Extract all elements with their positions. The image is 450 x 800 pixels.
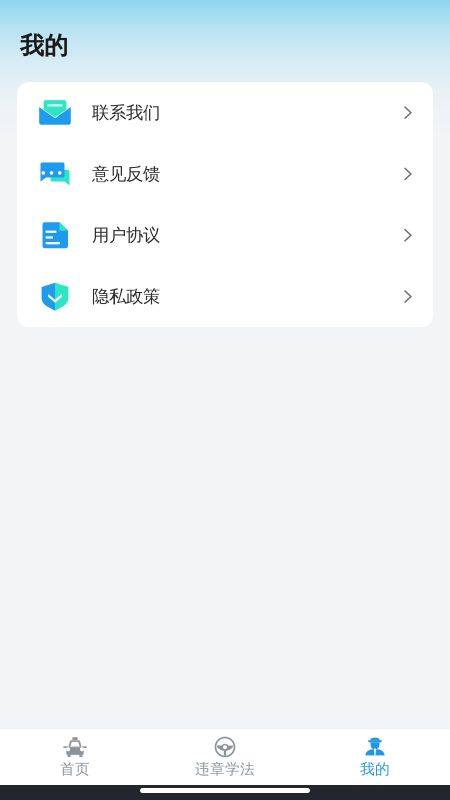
button[interactable]: 意见反馈	[17, 143, 433, 205]
staticText: 联系我们	[92, 102, 160, 123]
staticText: 用户协议	[92, 225, 160, 246]
staticText: 违章学法	[195, 760, 255, 778]
button[interactable]: 用户协议	[17, 205, 433, 266]
button[interactable]: 联系我们	[17, 82, 433, 143]
staticText: 首页	[60, 760, 90, 778]
button[interactable]: 违章学法	[150, 729, 300, 785]
button[interactable]: 首页	[0, 729, 150, 785]
staticText: 我的	[360, 760, 390, 778]
button[interactable]: 我的	[300, 729, 450, 785]
button[interactable]: 隐私政策	[17, 266, 433, 327]
staticText: 隐私政策	[92, 286, 160, 307]
staticText: 意见反馈	[92, 163, 160, 185]
staticText: 我的	[20, 31, 68, 60]
